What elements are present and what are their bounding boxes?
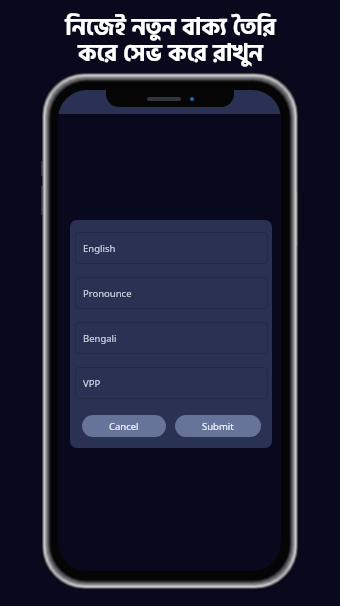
button[interactable]: Pronounce xyxy=(75,277,268,309)
staticText: নিজেই নতুন বাক্য তৈরি করে সেভ করে রাখুন xyxy=(65,8,276,73)
staticText: Cancel xyxy=(109,420,139,433)
button[interactable]: English xyxy=(75,232,268,264)
staticText: English xyxy=(83,242,116,255)
staticText: Submit xyxy=(202,420,234,433)
button[interactable]: Submit xyxy=(175,415,261,437)
staticText: Pronounce xyxy=(83,287,132,300)
staticText: VPP xyxy=(83,377,101,390)
button[interactable]: Bengali xyxy=(75,322,268,354)
button[interactable]: VPP xyxy=(75,367,268,399)
button[interactable]: Cancel xyxy=(82,415,166,437)
staticText: Bengali xyxy=(83,332,117,345)
